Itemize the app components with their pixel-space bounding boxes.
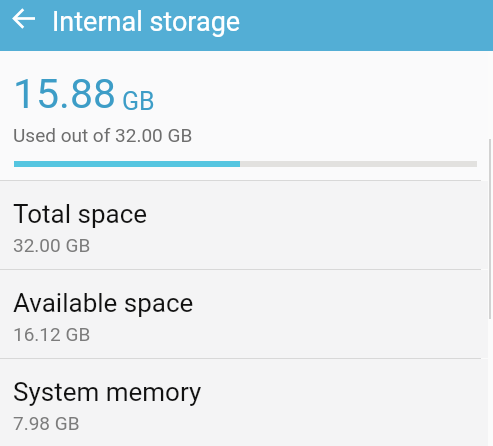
button[interactable]: System memory — [0, 359, 493, 446]
button[interactable]: Back — [1, 0, 47, 41]
staticText: 15.88 — [13, 70, 116, 118]
staticText: 16.12 GB — [13, 323, 91, 345]
staticText: Used out of 32.00 GB — [13, 124, 193, 146]
staticText: Total space — [13, 199, 148, 229]
staticText: Available space — [13, 288, 194, 318]
staticText: 32.00 GB — [13, 234, 91, 256]
staticText: System memory — [13, 377, 202, 407]
staticText: Internal storage — [52, 6, 241, 38]
staticText: GB — [122, 87, 155, 116]
button[interactable]: Total space — [0, 181, 493, 269]
button[interactable]: Available space — [0, 270, 493, 358]
staticText: 7.98 GB — [13, 412, 80, 434]
